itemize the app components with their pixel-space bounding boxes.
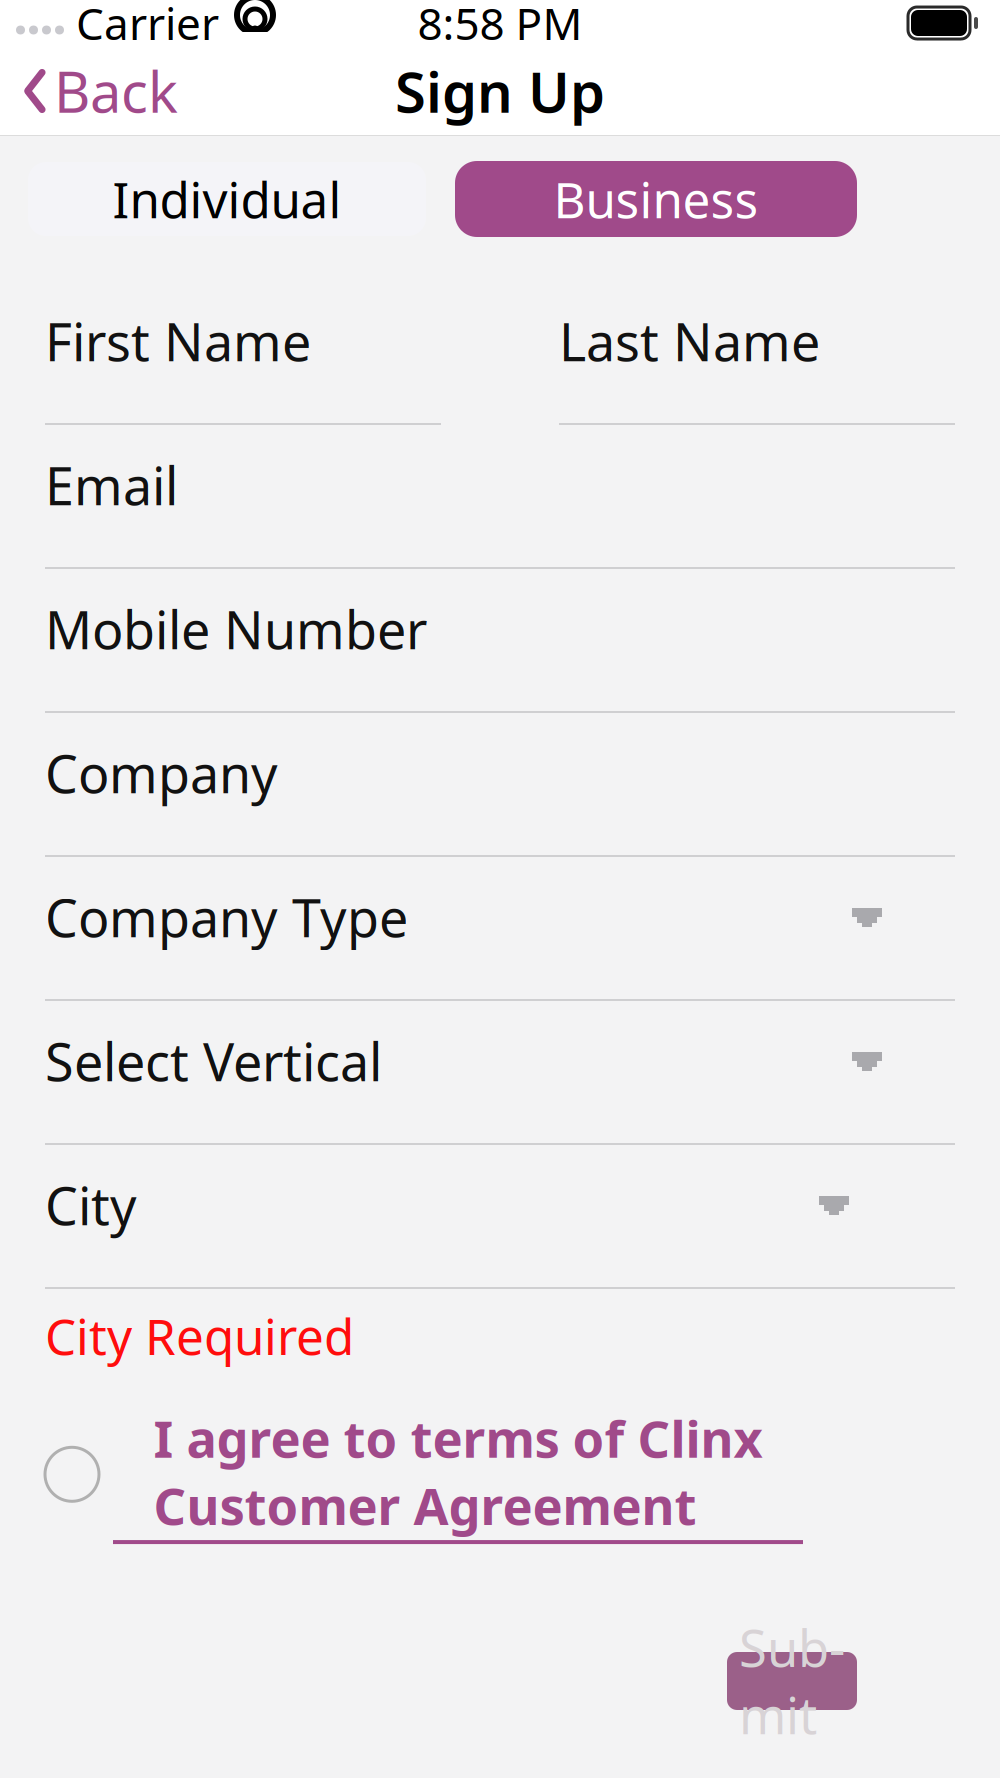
staticText: I agree to terms of Clinx Customer Agree…: [153, 1404, 762, 1539]
button[interactable]: Back: [0, 44, 198, 138]
button[interactable]: Company Type: [45, 879, 955, 1001]
button[interactable]: Last Name: [559, 303, 955, 425]
staticText: Back: [54, 54, 178, 128]
staticText: Individual: [112, 166, 341, 232]
button[interactable]: First Name: [45, 303, 441, 425]
staticText: Email: [45, 450, 178, 520]
button[interactable]: Mobile Number: [45, 591, 955, 713]
staticText: Mobile Number: [45, 594, 427, 664]
button[interactable]: Company: [45, 735, 955, 857]
button[interactable]: City: [45, 1167, 955, 1289]
button[interactable]: Submit: [727, 1652, 857, 1710]
button[interactable]: Individual: [28, 162, 426, 236]
staticText: 8:58 PM: [417, 0, 582, 52]
button[interactable]: Select Vertical: [45, 1023, 955, 1145]
staticText: City: [45, 1170, 137, 1240]
staticText: Business: [553, 166, 758, 232]
staticText: Company: [45, 738, 278, 808]
staticText: Last Name: [559, 306, 820, 376]
staticText: Submit: [739, 1614, 845, 1748]
staticText: Sign Up: [395, 54, 605, 128]
staticText: Carrier: [76, 0, 219, 52]
staticText: Company Type: [45, 882, 408, 952]
staticText: First Name: [45, 306, 311, 376]
button[interactable]: Email: [45, 447, 955, 569]
button[interactable]: I agree to terms of Clinx Customer Agree…: [0, 1390, 1000, 1558]
staticText: Select Vertical: [45, 1026, 382, 1096]
button[interactable]: Business: [455, 161, 857, 237]
staticText: City Required: [45, 1303, 354, 1368]
